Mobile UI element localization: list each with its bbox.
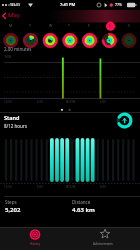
staticText: History	[30, 242, 41, 246]
staticText: 6:00	[37, 185, 43, 189]
staticText: 2,00 minutes	[4, 46, 32, 52]
staticText: MIN	[5, 55, 12, 59]
staticText: 8/12 hours	[4, 123, 27, 129]
staticText: Stand	[4, 114, 20, 121]
staticText: 12:00	[4, 185, 12, 189]
staticText: 12:00	[4, 100, 12, 104]
button[interactable]: History	[14, 228, 56, 250]
staticText: F	[88, 23, 90, 28]
staticText: M	[9, 23, 13, 28]
staticText: Achievements	[93, 242, 113, 246]
button[interactable]: Achievements	[84, 228, 128, 250]
staticText: S	[109, 23, 111, 28]
staticText: Distance	[72, 199, 91, 205]
staticText: Steps	[5, 199, 17, 205]
staticText: May	[8, 11, 20, 19]
staticText: NOON	[66, 185, 76, 189]
staticText: NOON	[66, 100, 76, 104]
staticText: 6:00	[100, 185, 106, 189]
staticText: W	[49, 23, 53, 28]
staticText: 7:41 PM	[60, 2, 76, 7]
staticText: T	[29, 23, 31, 28]
button[interactable]	[0, 113, 140, 135]
staticText: 77%	[115, 2, 122, 7]
staticText: S	[128, 23, 130, 28]
staticText: 4.63 km	[72, 206, 95, 214]
staticText: 6:00	[100, 100, 106, 104]
staticText: 5,202	[5, 206, 21, 214]
button[interactable]: May	[0, 10, 34, 22]
staticText: T	[68, 23, 70, 28]
staticText: 6:00	[37, 100, 43, 104]
staticText: TELUS	[10, 2, 21, 7]
